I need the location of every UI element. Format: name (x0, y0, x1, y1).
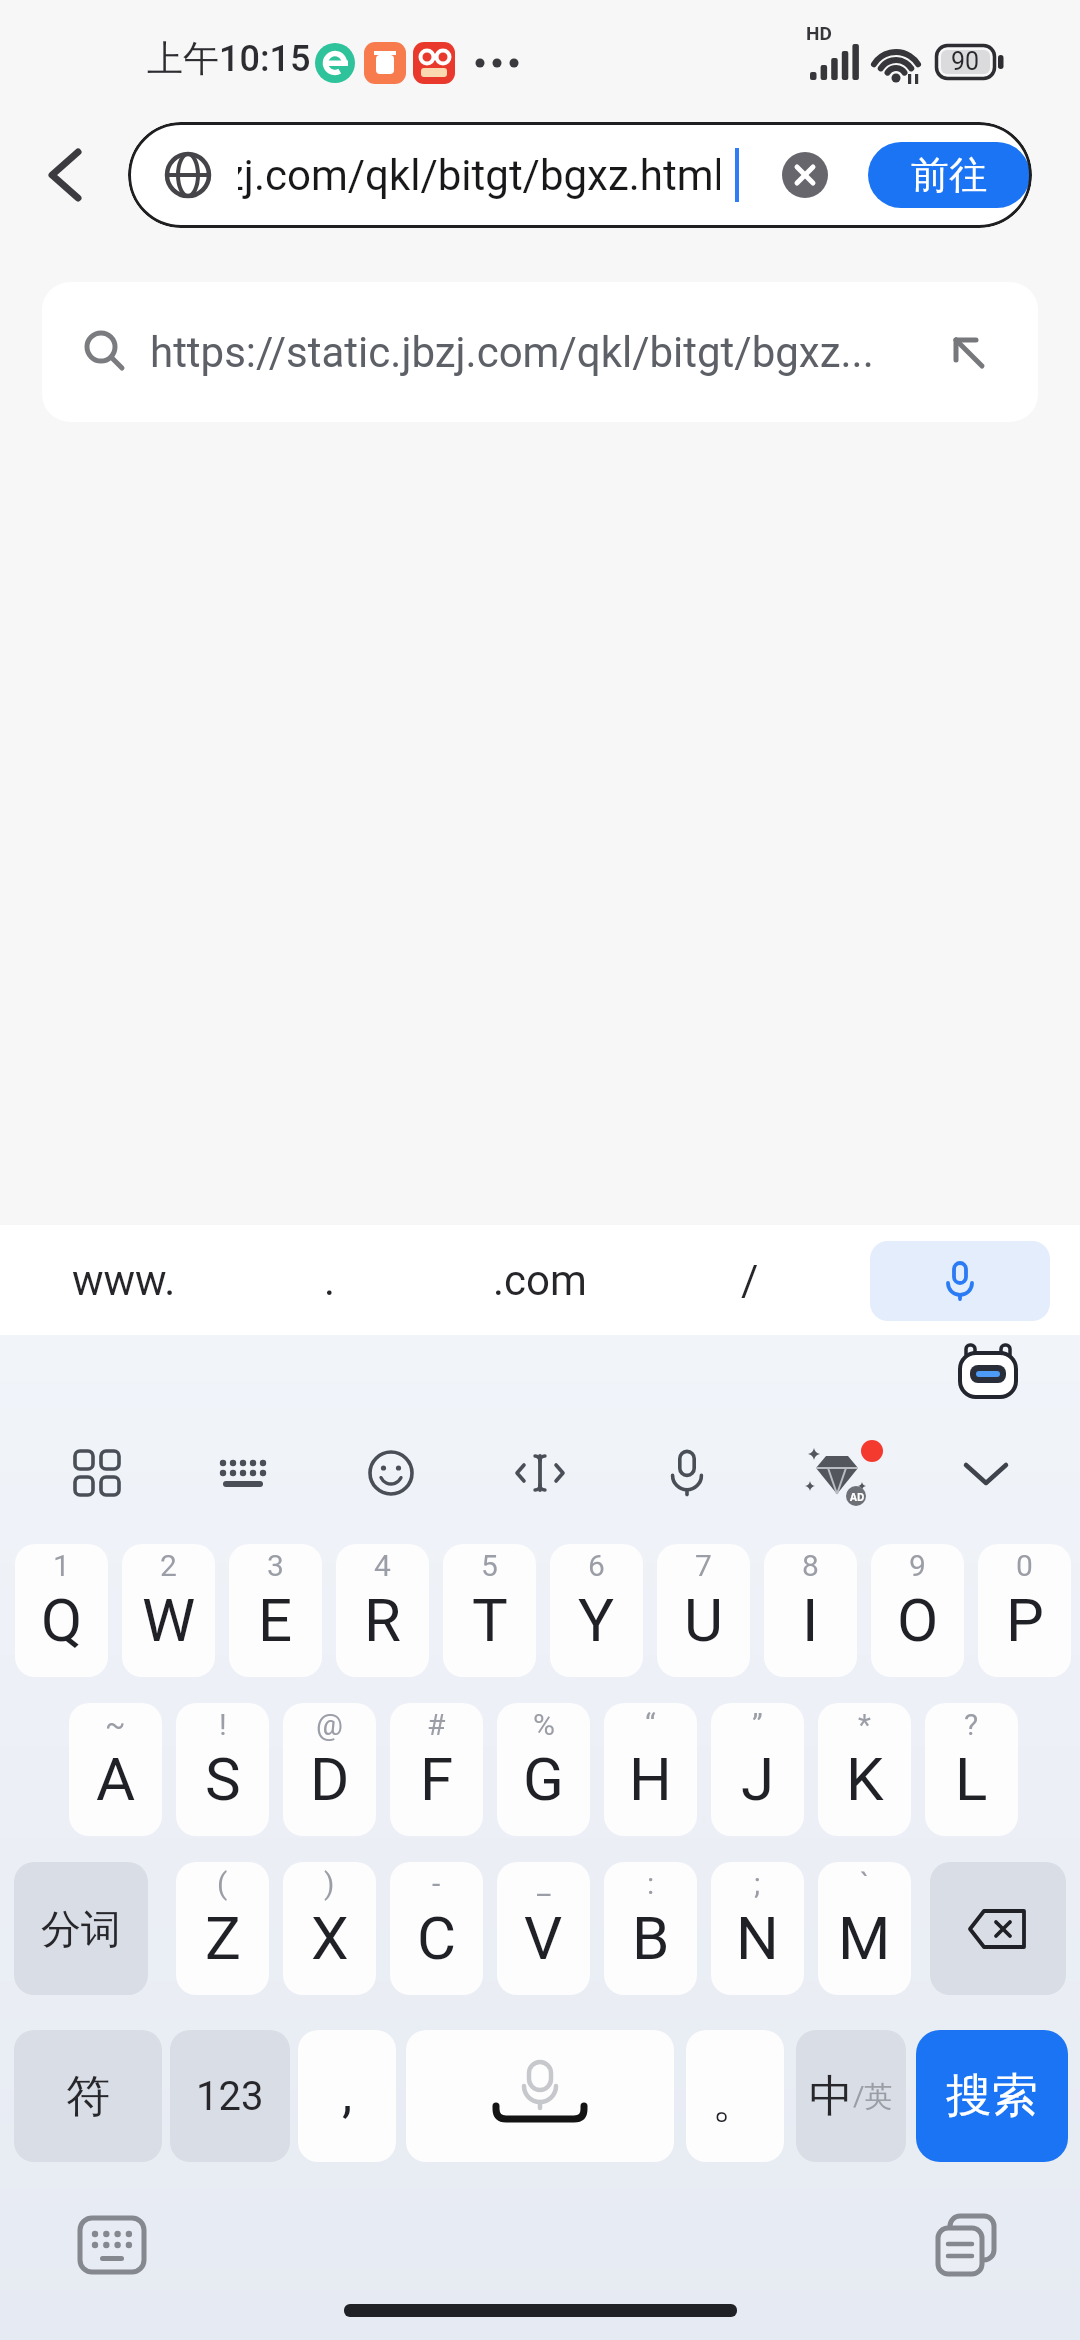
button[interactable]: _ (497, 1862, 590, 1995)
staticText: H (629, 1744, 672, 1814)
staticText: 1 (53, 1548, 70, 1583)
button[interactable]: % (497, 1703, 590, 1836)
button[interactable]: , (298, 2030, 396, 2162)
button[interactable]: ? (925, 1703, 1018, 1836)
button[interactable]: 8 (764, 1544, 857, 1677)
staticText: AD (850, 1490, 865, 1504)
staticText: 9 (909, 1548, 926, 1583)
button[interactable]: ` (818, 1862, 911, 1995)
staticText: ! (219, 1707, 227, 1742)
staticText: 5 (481, 1548, 498, 1583)
button[interactable] (219, 1449, 267, 1497)
button[interactable]: ~ (69, 1703, 162, 1836)
staticText: https://static.jbzj.com/qkl/bitgt/bgxz..… (150, 328, 874, 377)
button[interactable]: 3 (229, 1544, 322, 1677)
staticText: L (955, 1744, 988, 1814)
button[interactable]: 分词 (14, 1862, 148, 1995)
button[interactable]: ) (283, 1862, 376, 1995)
button[interactable]: ( (176, 1862, 269, 1995)
staticText: 0 (1016, 1548, 1033, 1583)
button[interactable]: 0 (978, 1544, 1071, 1677)
button[interactable]: 6 (550, 1544, 643, 1677)
button[interactable]: @ (283, 1703, 376, 1836)
staticText: HD (806, 22, 832, 44)
staticText: * (858, 1707, 871, 1742)
staticText: 搜索 (946, 2067, 1038, 2125)
button[interactable]: ! (176, 1703, 269, 1836)
staticText: ` (860, 1866, 870, 1901)
staticText: ” (752, 1707, 763, 1742)
button[interactable]: : (604, 1862, 697, 1995)
button[interactable] (870, 1241, 1050, 1321)
button[interactable]: * (818, 1703, 911, 1836)
button[interactable] (934, 2214, 1004, 2278)
staticText: Y (578, 1585, 615, 1655)
button[interactable] (663, 1449, 711, 1497)
button[interactable]: www. (64, 1225, 184, 1335)
button[interactable] (782, 152, 828, 198)
button[interactable]: “ (604, 1703, 697, 1836)
button[interactable]: 2 (122, 1544, 215, 1677)
button[interactable]: 9 (871, 1544, 964, 1677)
button[interactable]: 前往 (868, 142, 1030, 208)
button[interactable]: / (710, 1225, 790, 1335)
button[interactable] (73, 1449, 121, 1497)
staticText: O (897, 1585, 939, 1655)
button[interactable]: https://static.jbzj.com/qkl/bitgt/bgxz..… (42, 282, 1038, 422)
button[interactable]: . (290, 1225, 370, 1335)
staticText: ; (754, 1866, 761, 1901)
staticText: % (533, 1707, 555, 1742)
staticText: “ (645, 1707, 656, 1742)
button[interactable]: 5 (443, 1544, 536, 1677)
staticText: 3 (267, 1548, 284, 1583)
button[interactable] (36, 145, 96, 205)
staticText: ? (964, 1707, 979, 1742)
staticText: N (736, 1903, 779, 1973)
button[interactable]: 4 (336, 1544, 429, 1677)
button[interactable]: - (390, 1862, 483, 1995)
staticText: W (142, 1585, 196, 1655)
button[interactable]: 中 (796, 2030, 906, 2162)
staticText: . (324, 1256, 336, 1305)
button[interactable]: 。 (686, 2030, 784, 2162)
staticText: B (632, 1903, 670, 1973)
button[interactable]: 7 (657, 1544, 750, 1677)
button[interactable]: 符 (14, 2030, 162, 2162)
button[interactable] (930, 1862, 1066, 1995)
button[interactable]: # (390, 1703, 483, 1836)
button[interactable] (78, 2214, 148, 2278)
button[interactable]: 1 (15, 1544, 108, 1677)
staticText: X (311, 1903, 349, 1973)
button[interactable]: ” (711, 1703, 804, 1836)
button[interactable] (367, 1449, 415, 1497)
staticText: 中 (809, 2069, 853, 2124)
button[interactable] (516, 1449, 564, 1497)
button[interactable]: ; (711, 1862, 804, 1995)
button[interactable]: AD (806, 1446, 868, 1508)
staticText: Q (41, 1585, 83, 1655)
staticText: P (1006, 1585, 1044, 1655)
staticText: ( (217, 1866, 228, 1901)
button[interactable]: 搜索 (916, 2030, 1068, 2162)
button[interactable]: zj.com/qkl/bitgt/bgxz.html (128, 122, 1032, 228)
staticText: 4 (374, 1548, 391, 1583)
button[interactable]: 123 (170, 2030, 290, 2162)
staticText: D (310, 1744, 350, 1814)
staticText: , (342, 2064, 353, 2125)
staticText: C (417, 1903, 457, 1973)
staticText: _ (537, 1866, 551, 1901)
staticText: 2 (160, 1548, 177, 1583)
staticText: 90 (951, 47, 980, 76)
staticText: S (205, 1744, 241, 1814)
staticText: 前往 (911, 151, 987, 199)
staticText: www. (72, 1256, 176, 1305)
staticText: 8 (802, 1548, 819, 1583)
staticText: A (96, 1744, 136, 1814)
staticText: ) (324, 1866, 335, 1901)
button[interactable] (406, 2030, 674, 2162)
button[interactable] (962, 1449, 1010, 1497)
button[interactable]: .com (490, 1225, 590, 1335)
staticText: T (472, 1585, 508, 1655)
staticText: 。 (712, 2073, 758, 2131)
staticText: 123 (196, 2073, 264, 2120)
